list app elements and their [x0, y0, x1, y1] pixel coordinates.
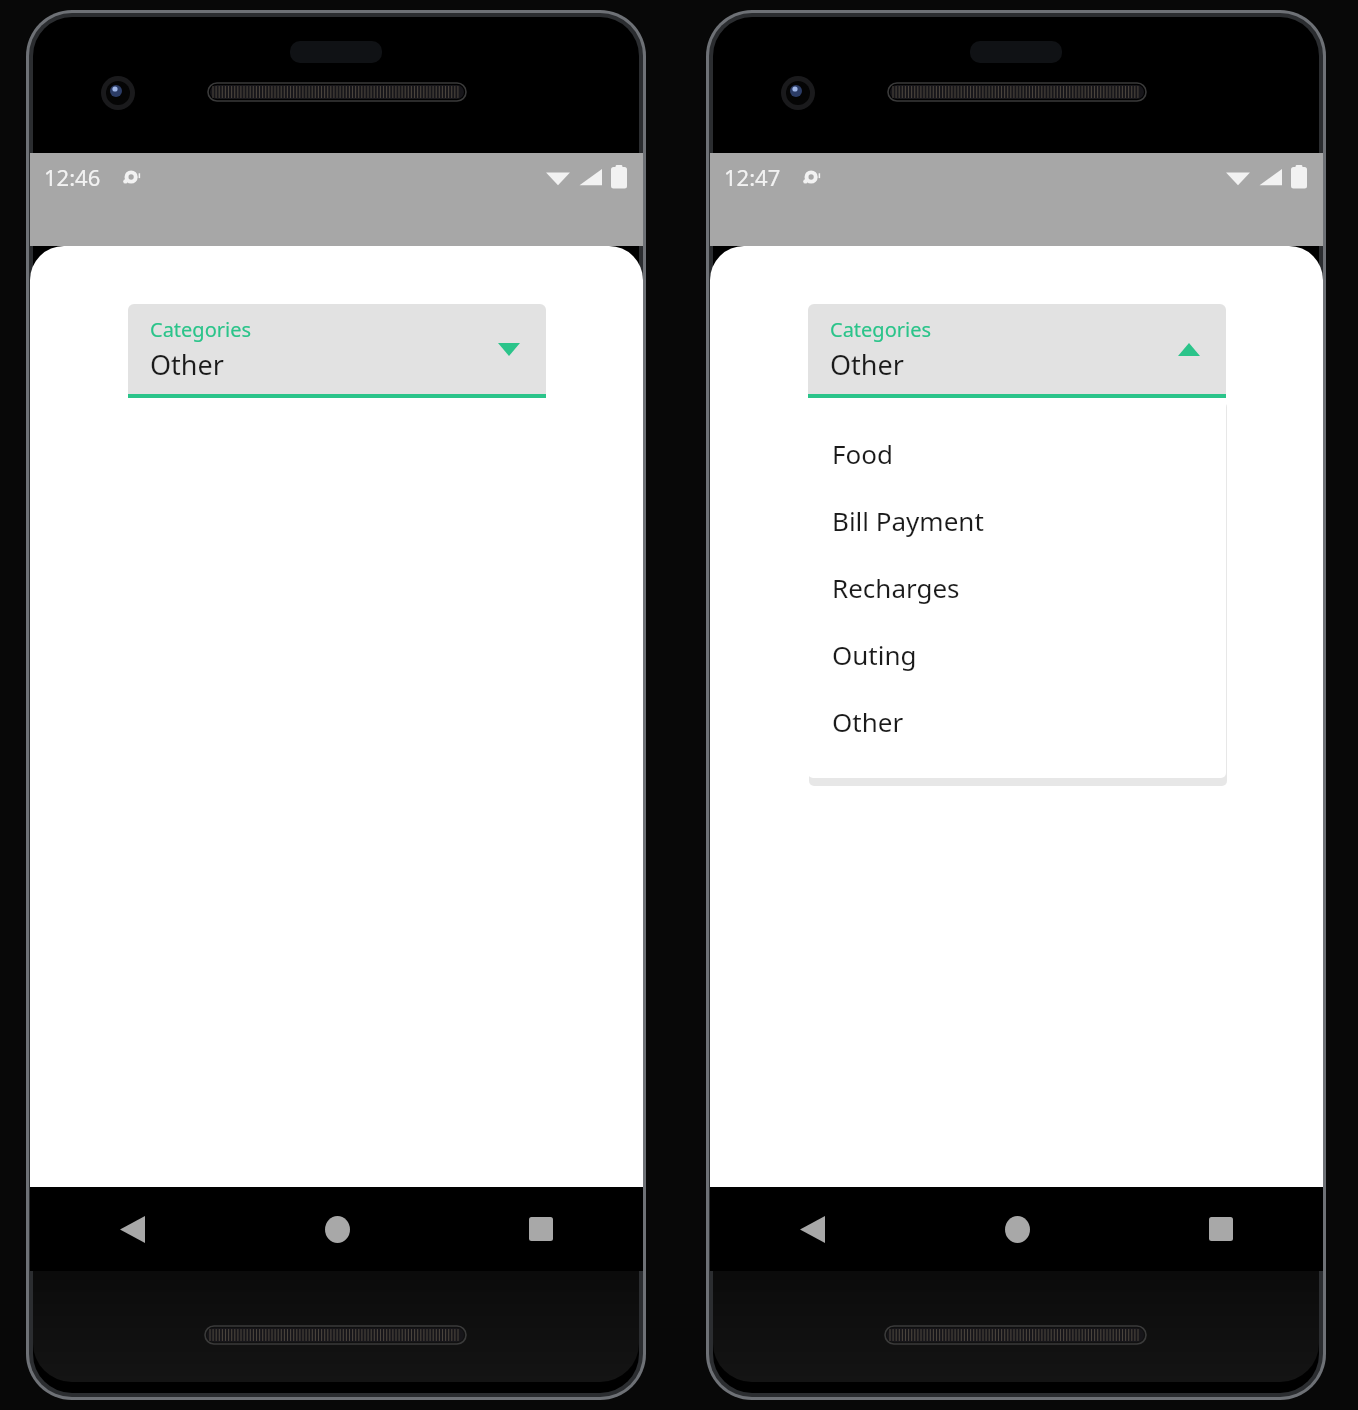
other: Expand — [494, 334, 524, 364]
other: Collapse — [1174, 334, 1204, 364]
staticText: Categories — [830, 316, 932, 343]
button[interactable]: Outing — [808, 621, 1226, 688]
button[interactable]: Recent apps — [1119, 1187, 1323, 1271]
staticText: Outing — [832, 637, 917, 672]
staticText: 12:46 — [44, 162, 101, 192]
button[interactable]: Back — [710, 1187, 915, 1271]
button[interactable]: Recharges — [808, 554, 1226, 621]
button[interactable]: Back — [30, 1187, 235, 1271]
button[interactable]: Categories — [128, 304, 546, 394]
staticText: Other — [832, 704, 904, 739]
staticText: Recharges — [832, 570, 960, 605]
button[interactable]: Bill Payment — [808, 487, 1226, 554]
staticText: Other — [830, 346, 904, 383]
staticText: Food — [832, 436, 893, 471]
staticText: Categories — [150, 316, 252, 343]
button[interactable]: Categories — [808, 304, 1226, 394]
button[interactable]: Home — [235, 1187, 439, 1271]
button[interactable]: Recent apps — [439, 1187, 643, 1271]
staticText: 12:47 — [724, 162, 781, 192]
staticText: Other — [150, 346, 224, 383]
button[interactable]: Home — [915, 1187, 1119, 1271]
button[interactable]: Food — [808, 420, 1226, 487]
button[interactable]: Other — [808, 688, 1226, 755]
staticText: Bill Payment — [832, 503, 984, 538]
